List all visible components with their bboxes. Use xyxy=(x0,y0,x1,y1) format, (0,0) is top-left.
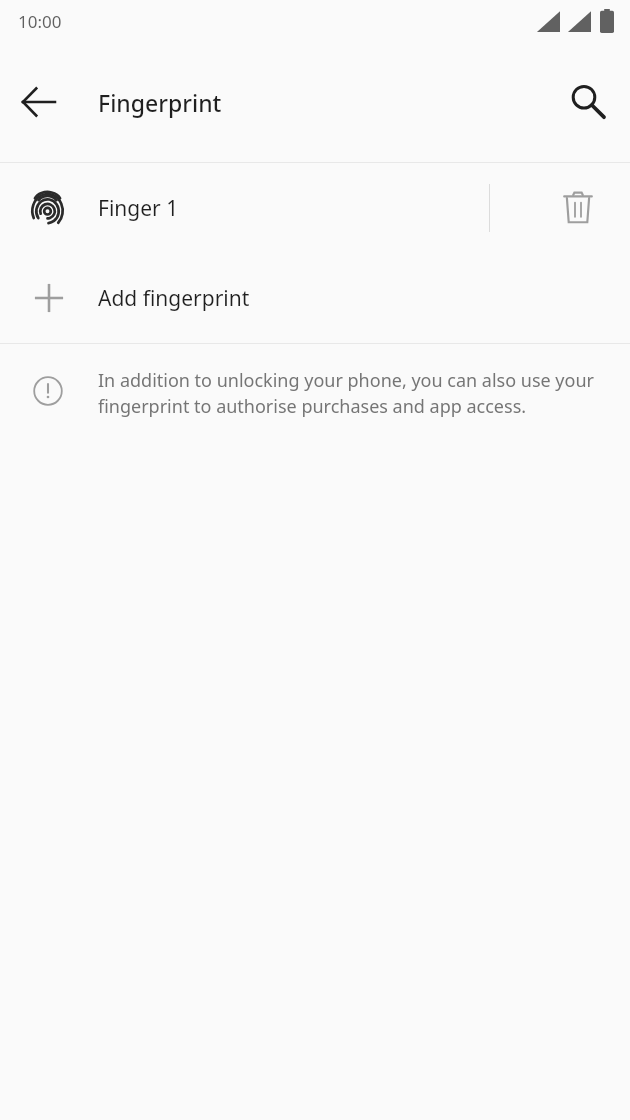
button[interactable]: Back xyxy=(13,76,65,128)
staticText: In addition to unlocking your phone, you… xyxy=(98,368,610,418)
button[interactable]: Finger 1 xyxy=(0,163,630,253)
staticText: 10:00 xyxy=(18,10,62,33)
button[interactable]: Delete fingerprint xyxy=(552,182,604,234)
staticText: Fingerprint xyxy=(98,87,222,118)
button[interactable]: Add fingerprint xyxy=(0,253,630,343)
button[interactable]: Search xyxy=(560,74,616,130)
staticText: Finger 1 xyxy=(98,194,179,223)
staticText: Add fingerprint xyxy=(98,284,250,313)
